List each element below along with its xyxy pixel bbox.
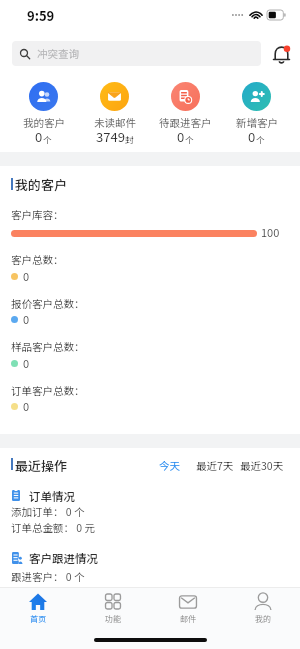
staticText: 首页 xyxy=(30,613,46,625)
button[interactable]: 邮件 xyxy=(150,593,225,625)
staticText: 功能 xyxy=(105,613,121,625)
staticText: 我的客户 xyxy=(15,175,68,194)
staticText: 100 xyxy=(261,224,280,240)
staticText: 订单客户总数： xyxy=(11,383,85,398)
staticText: 0 xyxy=(23,311,30,327)
button[interactable]: 冲突查询 xyxy=(12,41,261,66)
staticText: 今天 xyxy=(159,458,180,473)
staticText: 订单情况 xyxy=(29,488,75,505)
button[interactable]: 今天 xyxy=(157,456,182,475)
staticText: 0 xyxy=(23,268,30,284)
staticText: 最近7天 xyxy=(196,458,234,473)
button[interactable]: 我的客户 xyxy=(8,82,79,152)
staticText: 跟进客户： 0 个 xyxy=(11,569,85,584)
staticText: 个 xyxy=(43,133,52,145)
staticText: 添加订单： 0 个 xyxy=(11,504,85,519)
staticText: 3749 xyxy=(96,127,125,146)
staticText: 客户库容： xyxy=(11,207,64,222)
staticText: 0 xyxy=(248,127,256,146)
button[interactable]: 最近7天 xyxy=(194,456,236,475)
button[interactable]: 订单情况 xyxy=(0,484,300,534)
staticText: 订单总金额： 0 元 xyxy=(11,520,96,535)
button[interactable]: 最近30天 xyxy=(238,456,286,475)
staticText: 个 xyxy=(256,133,265,145)
staticText: 邮件 xyxy=(180,613,196,625)
button[interactable]: 首页 xyxy=(0,593,75,625)
staticText: 我的 xyxy=(255,613,271,625)
staticText: 冲突查询 xyxy=(37,46,79,61)
staticText: 0 xyxy=(35,127,43,146)
staticText: 客户跟进情况 xyxy=(29,550,98,567)
button[interactable]: 待跟进客户 xyxy=(150,82,221,152)
staticText: 个 xyxy=(185,133,194,145)
staticText: 我的客户 xyxy=(23,115,65,130)
staticText: 9:59 xyxy=(27,6,55,25)
button[interactable]: 功能 xyxy=(75,593,150,625)
button[interactable]: 客户跟进情况 xyxy=(0,548,300,587)
staticText: 最近操作 xyxy=(15,456,68,475)
button[interactable]: 未读邮件 xyxy=(79,82,150,152)
staticText: 0 xyxy=(23,355,30,371)
staticText: 待跟进客户 xyxy=(159,115,212,130)
staticText: 未读邮件 xyxy=(94,115,136,130)
staticText: 0 xyxy=(23,398,30,414)
staticText: 0 xyxy=(177,127,185,146)
staticText: 最近30天 xyxy=(240,458,284,473)
staticText: 客户总数： xyxy=(11,252,64,267)
button[interactable]: 我的 xyxy=(225,593,300,625)
staticText: 新增客户 xyxy=(236,115,278,130)
staticText: 封 xyxy=(125,133,134,145)
staticText: 样品客户总数： xyxy=(11,339,85,354)
button[interactable]: 新增客户 xyxy=(221,82,292,152)
button[interactable]: Notifications xyxy=(268,41,294,67)
staticText: 报价客户总数： xyxy=(11,296,85,311)
